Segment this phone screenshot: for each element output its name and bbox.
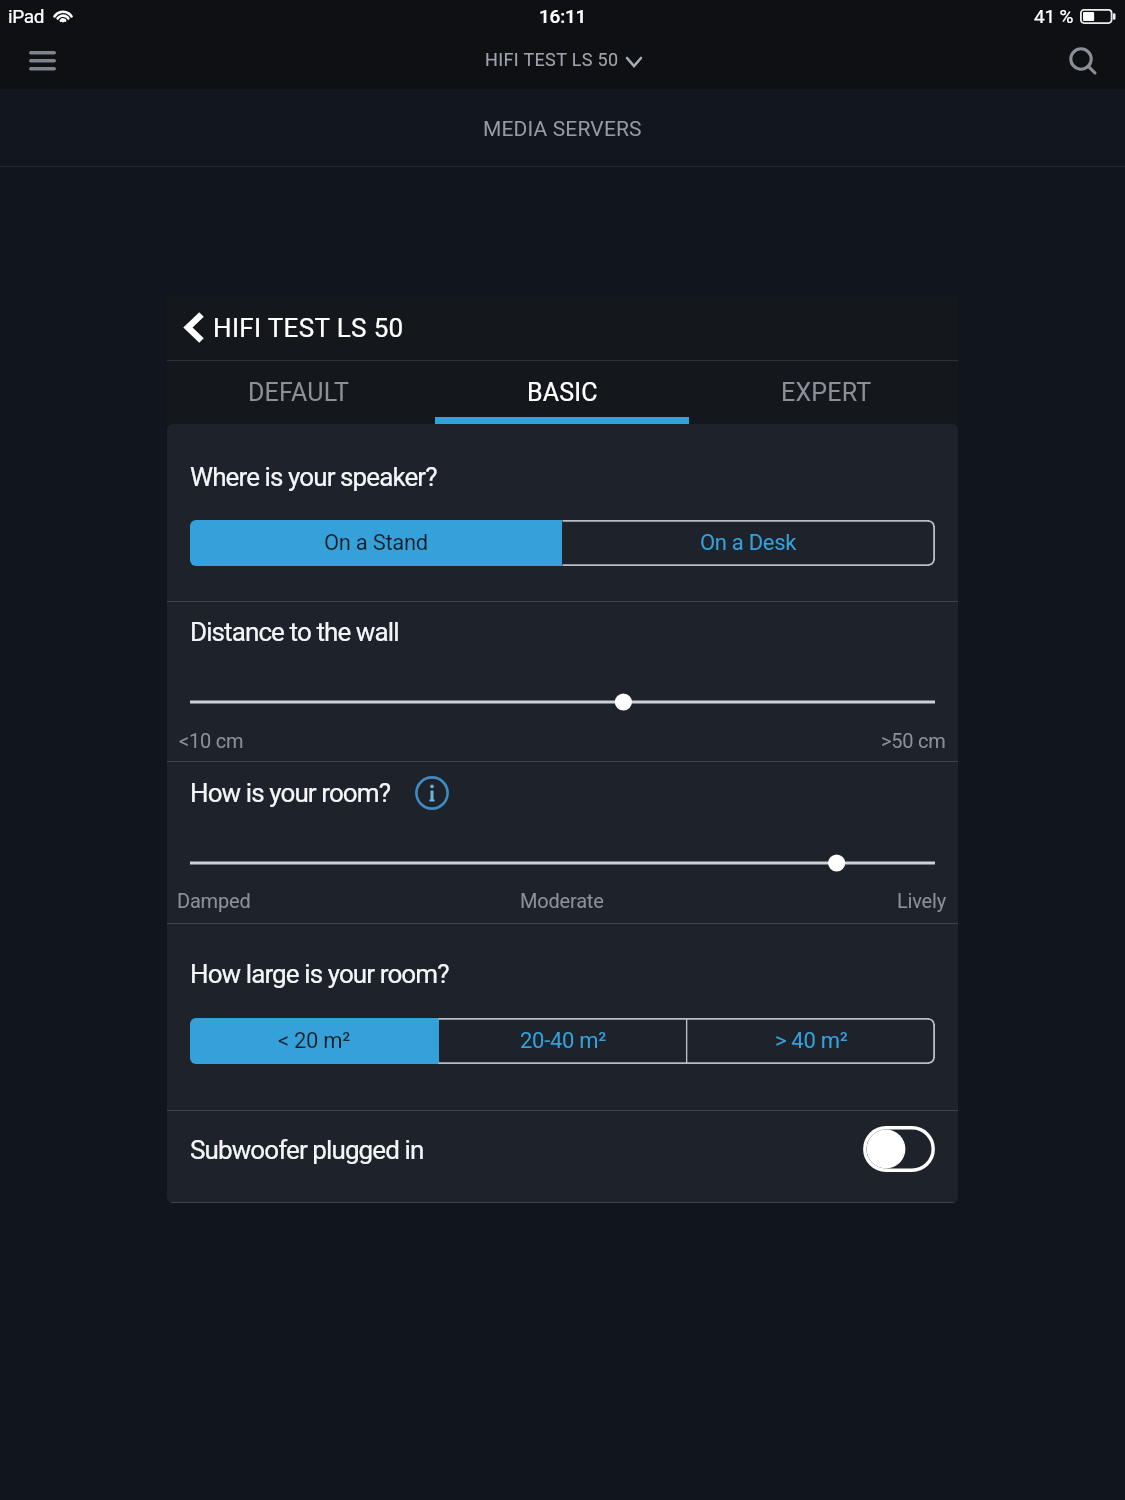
staticText: How is your room? <box>190 778 391 808</box>
staticText: 16:11 <box>539 5 587 27</box>
button[interactable]: Subwoofer plugged in <box>167 1111 958 1202</box>
button[interactable]: HIFI TEST LS 50 <box>485 49 641 70</box>
staticText: > 40 m² <box>775 1028 848 1054</box>
staticText: HIFI TEST LS 50 <box>213 313 404 343</box>
button[interactable]: Subwoofer toggle <box>863 1126 935 1172</box>
staticText: Lively <box>897 889 946 912</box>
button[interactable]: Info <box>412 773 452 813</box>
staticText: <10 cm <box>179 729 244 752</box>
staticText: 41 % <box>1034 5 1074 27</box>
staticText: HIFI TEST LS 50 <box>485 49 619 70</box>
button[interactable]: On a Stand <box>190 520 562 566</box>
button[interactable]: < 20 m² <box>190 1018 439 1064</box>
button[interactable]: Search <box>1061 35 1111 85</box>
staticText: Damped <box>177 889 251 912</box>
staticText: >50 cm <box>881 729 946 752</box>
staticText: iPad <box>8 5 44 27</box>
staticText: On a Stand <box>324 530 428 556</box>
button[interactable]: EXPERT <box>694 361 958 424</box>
staticText: Where is your speaker? <box>190 462 437 492</box>
staticText: How large is your room? <box>190 959 449 989</box>
staticText: BASIC <box>527 378 598 407</box>
staticText: Moderate <box>520 889 604 912</box>
button[interactable]: HIFI TEST LS 50 <box>167 295 958 360</box>
button[interactable]: DEFAULT <box>167 361 430 424</box>
staticText: DEFAULT <box>248 378 350 407</box>
button[interactable]: 20-40 m² <box>439 1018 687 1064</box>
button[interactable]: > 40 m² <box>687 1018 935 1064</box>
button[interactable]: On a Desk <box>562 520 935 566</box>
staticText: 20-40 m² <box>520 1028 606 1054</box>
button[interactable]: Menu <box>17 35 67 85</box>
staticText: Subwoofer plugged in <box>190 1135 424 1165</box>
staticText: EXPERT <box>781 378 872 407</box>
staticText: On a Desk <box>700 530 797 556</box>
staticText: MEDIA SERVERS <box>483 117 642 142</box>
staticText: Distance to the wall <box>190 617 399 647</box>
staticText: < 20 m² <box>278 1028 351 1054</box>
button[interactable]: BASIC <box>430 361 694 424</box>
